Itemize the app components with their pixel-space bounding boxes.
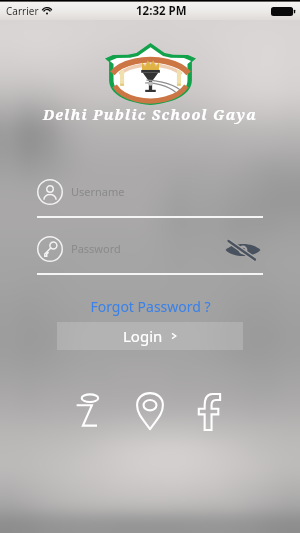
button[interactable]: Show password <box>228 235 258 262</box>
staticText: Carrier <box>6 4 39 18</box>
button[interactable]: Facebook <box>197 392 227 432</box>
staticText: Username <box>71 184 125 199</box>
staticText: Forgot Password ? <box>90 297 211 316</box>
button[interactable]: Information <box>73 392 103 432</box>
button[interactable]: Forgot Password ? <box>84 296 217 317</box>
button[interactable]: Location <box>135 392 165 432</box>
staticText: Password <box>71 241 121 256</box>
staticText: Delhi Public School Gaya <box>0 104 300 124</box>
staticText: 12:32 PM <box>136 3 187 19</box>
staticText: Login <box>123 326 163 346</box>
button[interactable]: Login <box>57 322 243 350</box>
